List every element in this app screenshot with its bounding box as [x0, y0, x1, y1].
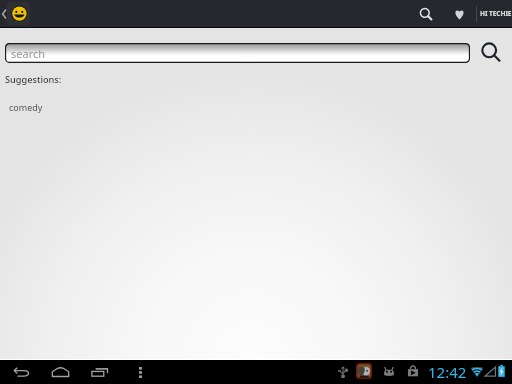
button[interactable]: HI TECHIE: [478, 0, 512, 27]
button[interactable]: Recent apps: [82, 360, 118, 384]
button[interactable]: Search: [413, 0, 439, 27]
button[interactable]: comedy: [9, 101, 43, 113]
button[interactable]: search: [5, 43, 470, 63]
button[interactable]: Favourites: [449, 0, 470, 27]
staticText: search: [11, 46, 46, 61]
staticText: 12:42: [428, 362, 467, 382]
button[interactable]: More options: [126, 360, 154, 384]
staticText: HI TECHIE: [480, 9, 512, 18]
staticText: Suggestions:: [5, 73, 62, 86]
button[interactable]: Navigate up: [0, 0, 33, 27]
button[interactable]: Back: [2, 360, 40, 384]
button[interactable]: Home: [40, 360, 80, 384]
button[interactable]: Search: [474, 39, 510, 69]
